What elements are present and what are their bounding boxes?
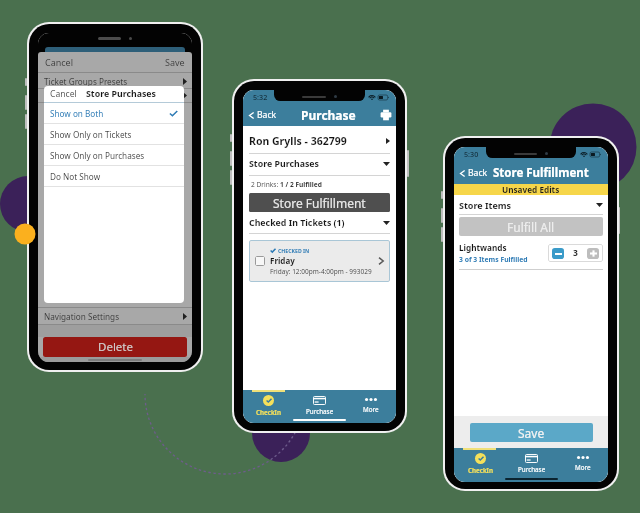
staticText: Do Not Show [50,171,101,182]
staticText: More [575,463,591,472]
staticText: 3 [573,247,578,259]
button[interactable]: Ron Grylls - 362799 [249,134,390,148]
staticText: Friday: 12:00pm-4:00pm - 993029 [270,267,372,276]
staticText: Fields [44,90,67,101]
button[interactable]: Navigation Settings [44,308,187,324]
button[interactable]: Fields [44,89,187,102]
staticText: Store Purchases [86,88,157,100]
button[interactable]: Save [165,56,185,68]
button[interactable]: Show Only on Tickets [50,124,178,144]
button[interactable]: Purchase [506,453,557,482]
staticText: Show Only on Tickets [50,129,132,140]
button[interactable]: Cancel [50,88,77,100]
button[interactable]: Show Only on Purchases [50,145,178,165]
button[interactable]: CheckIn [454,453,506,482]
staticText: Ron Grylls - 362799 [249,134,347,148]
button[interactable]: Do Not Show [50,166,178,186]
button[interactable]: Ticket Groups Presets [44,75,187,88]
staticText: Show on Both [50,108,104,119]
staticText: Ticket Groups Presets [44,76,128,87]
button[interactable]: Purchase [294,395,345,423]
staticText: Purchase [301,107,356,123]
button[interactable]: Cancel [45,56,74,68]
staticText: Navigation Settings [44,311,120,322]
button[interactable]: Print [380,109,392,121]
staticText: CheckIn [256,408,281,417]
staticText: Save [518,425,545,441]
button[interactable]: Decrease [552,248,564,259]
staticText: CHECKED IN [278,247,310,254]
staticText: Back [468,167,488,179]
button[interactable]: Increase [587,248,599,259]
button[interactable]: CHECKED IN [249,240,390,282]
button[interactable]: Store Fulfillment [249,193,390,212]
button[interactable]: Back [458,167,488,179]
button[interactable]: Fulfill All [459,217,603,236]
button[interactable]: Show on Both [50,103,178,123]
button[interactable]: More [557,453,608,482]
staticText: Delete [98,339,133,355]
button[interactable]: Save [470,423,593,442]
staticText: Lightwands [459,242,507,253]
staticText: More [363,405,379,414]
button[interactable]: Back [247,109,277,121]
staticText: 5:30 [464,149,479,159]
staticText: Store Fulfillment [493,165,589,181]
staticText: Store Fulfillment [273,195,366,211]
staticText: Show Only on Purchases [50,150,145,161]
button[interactable]: Store Items [459,199,603,211]
staticText: Purchase [518,465,546,474]
staticText: Fulfill All [507,219,555,235]
staticText: Store Items [459,199,512,211]
button[interactable]: More [345,395,396,423]
button[interactable]: Store Purchases [249,158,390,170]
staticText: Back [257,109,277,121]
button[interactable]: Delete [43,337,187,357]
staticText: CheckIn [468,466,493,475]
staticText: Purchase [306,407,334,416]
staticText: Unsaved Edits [502,184,560,195]
staticText: Checked In Tickets (1) [249,217,345,229]
staticText: Store Purchases [249,158,320,170]
staticText: 2 Drinks: [251,180,280,189]
staticText: 5:32 [253,92,268,102]
button[interactable]: CheckIn [243,395,294,423]
staticText: 3 of 3 Items Fulfilled [459,255,528,264]
staticText: 1 / 2 Fulfilled [280,180,322,189]
button[interactable]: Checked In Tickets (1) [249,217,390,229]
staticText: Friday [270,255,295,266]
